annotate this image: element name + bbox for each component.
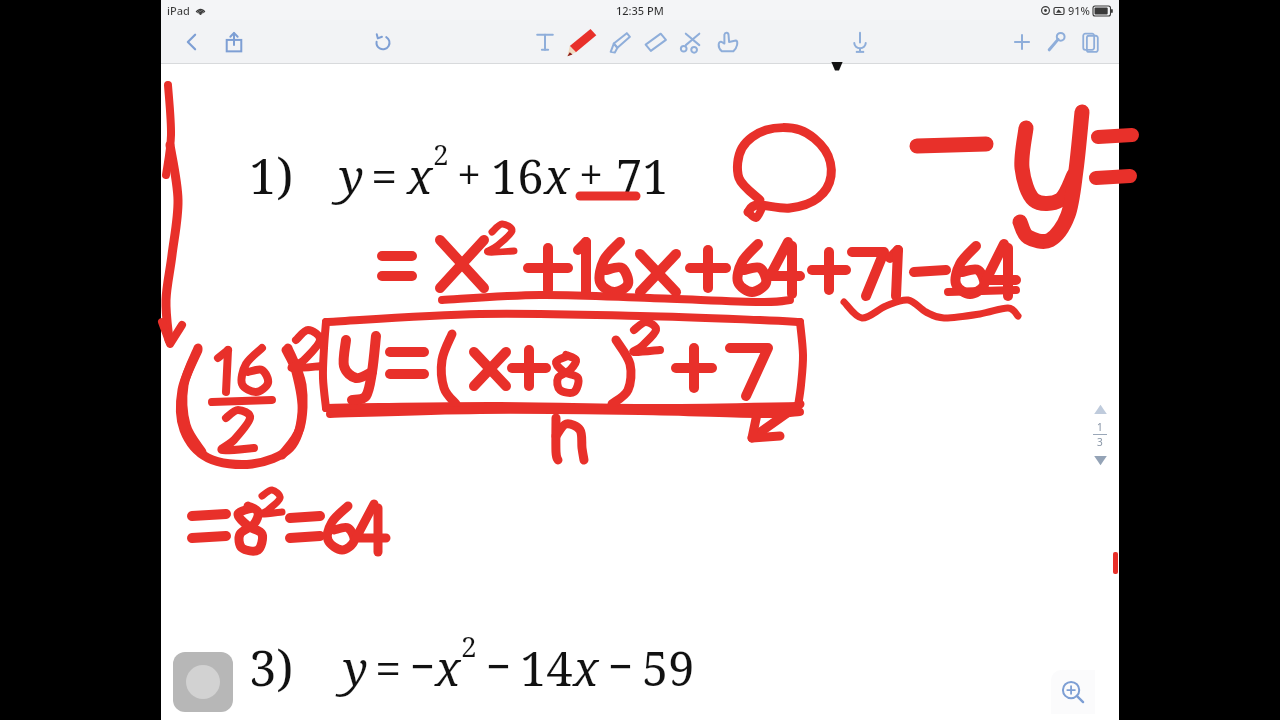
staticText: iPad <box>167 3 190 18</box>
button[interactable]: Zoom <box>1051 670 1095 714</box>
button[interactable]: Share <box>217 22 251 62</box>
staticText: 91% <box>1068 3 1090 18</box>
button[interactable]: Previous page <box>1089 398 1111 420</box>
staticText: 2 <box>461 627 477 665</box>
staticText: 71 <box>616 144 669 208</box>
staticText: x <box>573 636 599 700</box>
staticText: = <box>375 636 402 700</box>
staticText: + <box>579 144 604 203</box>
staticText: x <box>407 144 433 208</box>
staticText: 1 <box>1097 420 1103 434</box>
staticText: 3 <box>1097 435 1103 449</box>
staticText: x <box>435 636 461 700</box>
staticText: 16 <box>491 144 544 208</box>
button[interactable]: Pages <box>1073 22 1107 62</box>
staticText: − <box>608 636 633 695</box>
staticText: 1) <box>249 142 294 209</box>
button[interactable]: Pan <box>709 22 745 62</box>
button[interactable]: Highlighter <box>601 22 637 62</box>
staticText: y <box>339 144 364 208</box>
button[interactable]: Undo <box>366 22 400 62</box>
staticText: 2 <box>433 135 449 173</box>
button[interactable]: Cut <box>673 22 709 62</box>
staticText: 59 <box>642 636 695 700</box>
button[interactable]: Eraser <box>637 22 673 62</box>
staticText: 12:35 PM <box>616 3 664 18</box>
staticText: 14 <box>520 636 573 700</box>
button[interactable]: Palm rest <box>173 652 233 712</box>
staticText: = <box>371 144 398 208</box>
staticText: + <box>457 144 482 203</box>
staticText: y <box>343 636 368 700</box>
button[interactable]: Settings <box>1039 22 1073 62</box>
button[interactable]: Record audio <box>843 22 877 62</box>
button[interactable]: Text tool <box>529 22 561 62</box>
staticText: 3) <box>249 634 294 701</box>
staticText: − <box>410 636 435 695</box>
button[interactable]: Pen tool <box>561 20 601 64</box>
staticText: − <box>486 636 511 695</box>
button[interactable]: Add <box>1005 22 1039 62</box>
button[interactable]: Back <box>175 22 209 62</box>
button[interactable]: Next page <box>1089 449 1111 471</box>
staticText: x <box>544 144 570 208</box>
